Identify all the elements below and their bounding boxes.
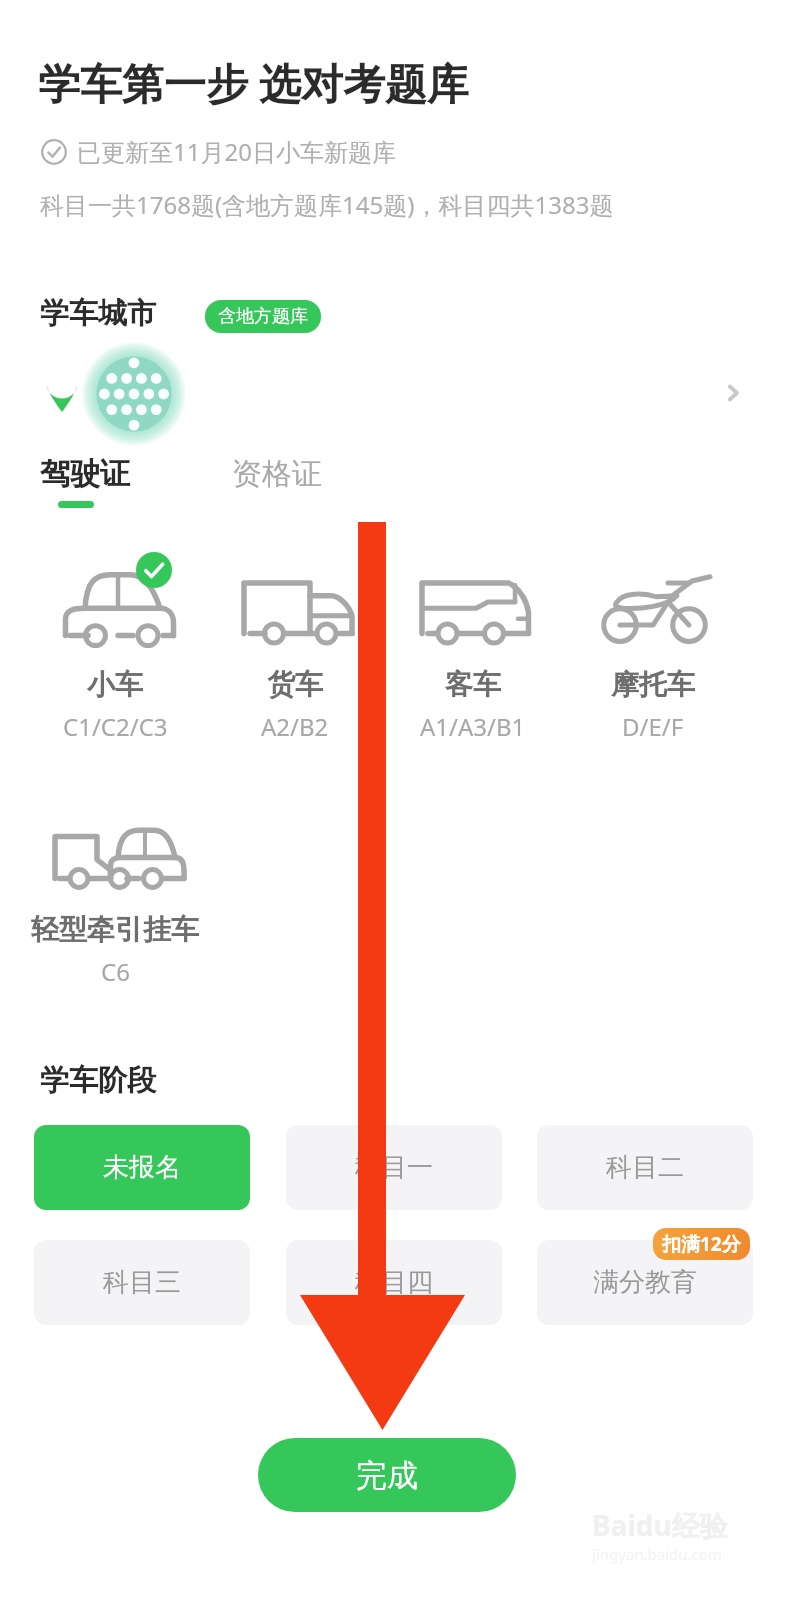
staticText: jingyan.baidu.com (592, 1544, 722, 1564)
staticText: A2/B2 (261, 710, 329, 743)
other: 选择城市 (713, 373, 753, 413)
button[interactable]: 科目二 (537, 1125, 753, 1210)
staticText: A1/A3/B1 (420, 710, 526, 743)
button[interactable]: 完成 (258, 1438, 516, 1512)
staticText: 科目三 (103, 1266, 181, 1299)
button[interactable]: 资格证 (232, 455, 322, 493)
staticText: C6 (101, 955, 130, 988)
staticText: 科目一共1768题(含地方题库145题)，科目四共1383题 (40, 188, 614, 221)
button[interactable]: 未报名 (34, 1125, 250, 1210)
staticText: 客车 (445, 667, 501, 702)
staticText: 小车 (87, 667, 143, 702)
button[interactable]: 客车 (383, 560, 563, 760)
staticText: 摩托车 (611, 667, 695, 702)
button[interactable]: 选择城市 (0, 340, 787, 445)
button[interactable]: 货车 (205, 560, 385, 760)
button[interactable]: 摩托车 (563, 560, 743, 760)
staticText: 资格证 (232, 455, 322, 493)
staticText: 轻型牵引挂车 (31, 912, 199, 947)
button[interactable]: 科目三 (34, 1240, 250, 1325)
staticText: Baidu经验 (592, 1506, 728, 1544)
staticText: 驾驶证 (40, 455, 130, 493)
button[interactable]: 轻型牵引挂车 (25, 805, 205, 1005)
button[interactable]: 含地方题库 (205, 300, 321, 333)
staticText: 学车阶段 (40, 1062, 156, 1099)
staticText: D/E/F (622, 710, 684, 743)
staticText: 科目一 (355, 1151, 433, 1184)
staticText: 满分教育 (593, 1266, 697, 1299)
staticText: 学车第一步 选对考题库 (38, 54, 469, 111)
button[interactable]: 科目四 (286, 1240, 502, 1325)
staticText: 学车城市 (40, 295, 156, 332)
button[interactable]: 小车 (25, 560, 205, 760)
staticText: 已更新至11月20日小车新题库 (77, 135, 396, 168)
staticText: 含地方题库 (218, 305, 308, 328)
staticText: C1/C2/C3 (63, 710, 168, 743)
button[interactable]: 科目一 (286, 1125, 502, 1210)
button[interactable]: 驾驶证 (40, 455, 130, 508)
staticText: 货车 (267, 667, 323, 702)
staticText: 未报名 (103, 1151, 181, 1184)
staticText: 完成 (356, 1456, 418, 1495)
staticText: 扣满12分 (662, 1231, 741, 1257)
staticText: 科目二 (606, 1151, 684, 1184)
button[interactable]: 满分教育 (537, 1240, 753, 1325)
staticText: 科目四 (355, 1266, 433, 1299)
